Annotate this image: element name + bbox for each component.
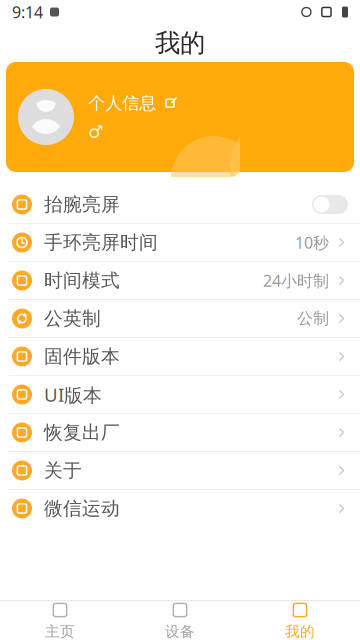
staticText: ♂ xyxy=(88,122,104,141)
staticText: 主页 xyxy=(45,622,75,640)
staticText: UI版本 xyxy=(44,382,102,407)
staticText: 10秒 xyxy=(295,232,329,253)
staticText: 24小时制 xyxy=(263,270,329,291)
staticText: 9:14 xyxy=(12,1,43,23)
staticText: 微信运动 xyxy=(44,497,120,520)
staticText: 手环亮屏时间 xyxy=(44,231,158,254)
button[interactable]: 微信运动 xyxy=(0,490,360,527)
button[interactable]: 恢复出厂 xyxy=(0,414,360,451)
staticText: 公制 xyxy=(297,309,329,328)
staticText: 恢复出厂 xyxy=(44,421,120,444)
staticText: 公英制 xyxy=(44,307,101,330)
staticText: 固件版本 xyxy=(44,345,120,368)
button[interactable]: UI版本 xyxy=(0,376,360,413)
button[interactable]: 时间模式 xyxy=(0,262,360,299)
staticText: 我的 xyxy=(285,622,315,640)
button[interactable]: 我的 xyxy=(240,601,360,640)
button[interactable]: 手环亮屏时间 xyxy=(0,224,360,261)
button[interactable]: 设备 xyxy=(120,601,240,640)
button[interactable]: 固件版本 xyxy=(0,338,360,375)
staticText: 抬腕亮屏 xyxy=(44,193,120,216)
staticText: 个人信息 xyxy=(88,92,156,114)
button[interactable]: 公英制 xyxy=(0,300,360,337)
button[interactable]: 关于 xyxy=(0,452,360,489)
button[interactable]: 主页 xyxy=(0,601,120,640)
staticText: 关于 xyxy=(44,459,82,482)
staticText: 设备 xyxy=(165,622,195,640)
button[interactable]: 抬腕亮屏 xyxy=(0,186,360,223)
staticText: 我的 xyxy=(155,27,205,58)
staticText: 时间模式 xyxy=(44,269,120,292)
button[interactable]: 个人信息 xyxy=(0,62,360,172)
